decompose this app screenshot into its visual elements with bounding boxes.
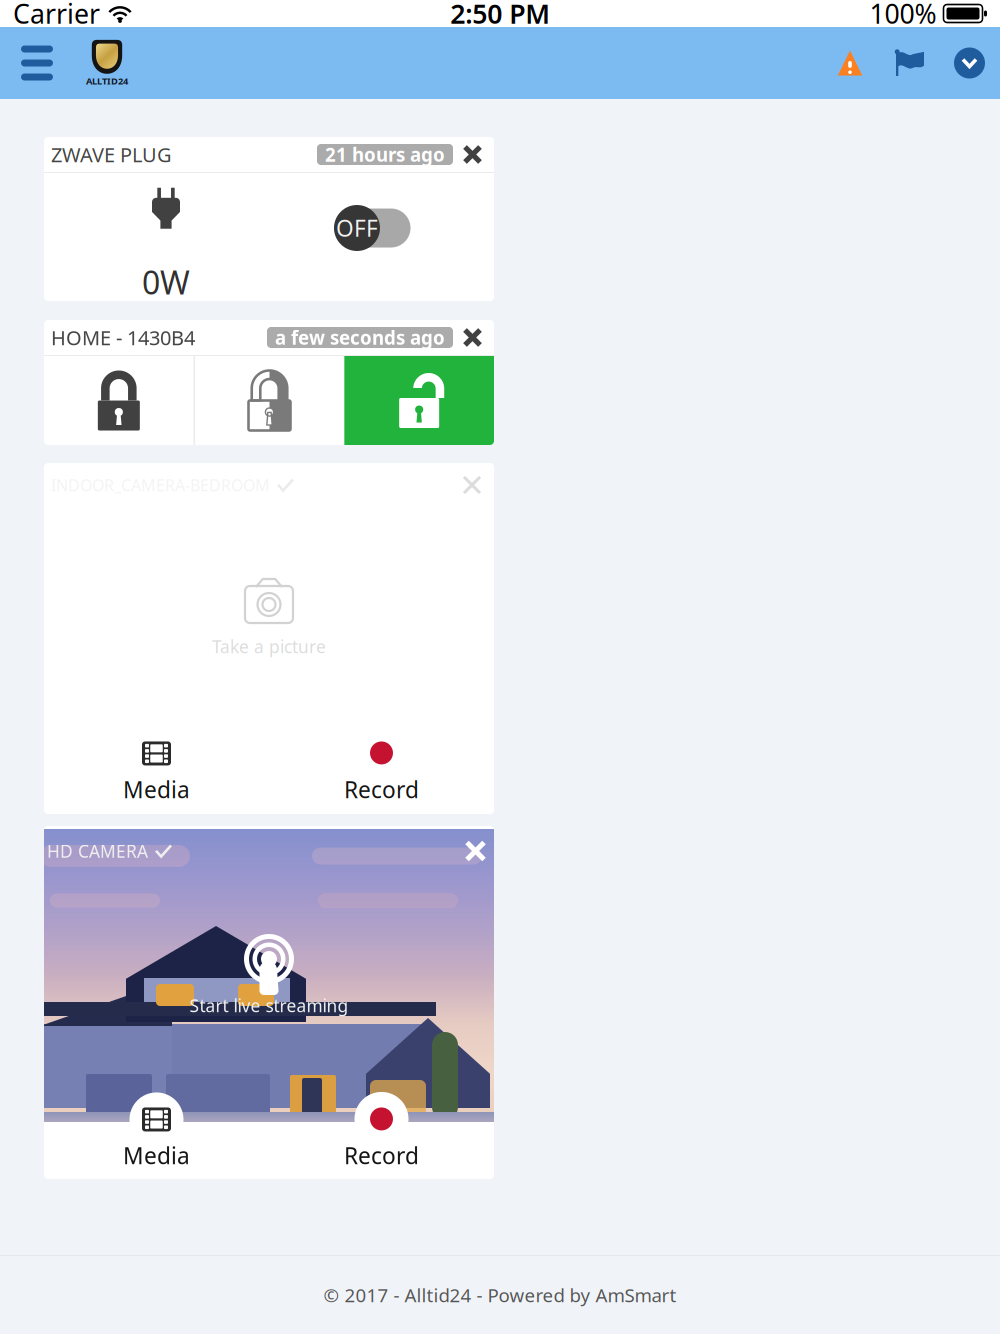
- staticText: HD CAMERA: [47, 839, 148, 862]
- button[interactable]: Take a picture: [44, 579, 494, 658]
- button[interactable]: Menu: [0, 30, 74, 95]
- button[interactable]: Media: [44, 741, 269, 810]
- staticText: a few seconds ago: [275, 325, 445, 350]
- staticText: Start live streaming: [189, 994, 348, 1017]
- staticText: OFF: [336, 213, 378, 243]
- button[interactable]: Toggle plug power: [325, 173, 425, 301]
- staticText: Media: [123, 774, 190, 804]
- staticText: Take a picture: [212, 635, 326, 658]
- button[interactable]: Media: [44, 1107, 269, 1176]
- staticText: Carrier: [13, 0, 100, 31]
- button[interactable]: Close HD camera: [455, 834, 496, 867]
- button[interactable]: Unlock door: [344, 356, 494, 445]
- staticText: 2:50 PM: [450, 0, 550, 31]
- button[interactable]: Start live streaming: [189, 934, 348, 1017]
- button[interactable]: Partially locked: [195, 356, 344, 445]
- staticText: HOME - 1430B4: [51, 324, 195, 351]
- button[interactable]: Close indoor camera: [452, 468, 492, 502]
- button[interactable]: Record: [269, 741, 494, 810]
- staticText: ALLTID24: [86, 75, 128, 87]
- staticText: Media: [123, 1140, 190, 1170]
- button[interactable]: Close ZWAVE PLUG: [453, 139, 492, 170]
- staticText: 0W: [142, 261, 190, 303]
- staticText: ZWAVE PLUG: [51, 141, 172, 168]
- staticText: 21 hours ago: [325, 142, 445, 167]
- button[interactable]: Flagged events: [880, 35, 940, 91]
- staticText: INDOOR_CAMERA-BEDROOM: [51, 474, 270, 496]
- button[interactable]: More options: [940, 32, 999, 93]
- button[interactable]: Alltid24 home: [74, 30, 140, 96]
- button[interactable]: Record: [269, 1107, 494, 1176]
- staticText: Record: [344, 774, 419, 804]
- staticText: Record: [344, 1140, 419, 1170]
- staticText: 100%: [869, 0, 936, 31]
- button[interactable]: Close HOME - 1430B4: [453, 322, 492, 353]
- staticText: © 2017 - Alltid24 - Powered by AmSmart: [323, 1283, 676, 1307]
- button[interactable]: Alerts: [820, 35, 880, 90]
- button[interactable]: Lock door: [44, 356, 194, 445]
